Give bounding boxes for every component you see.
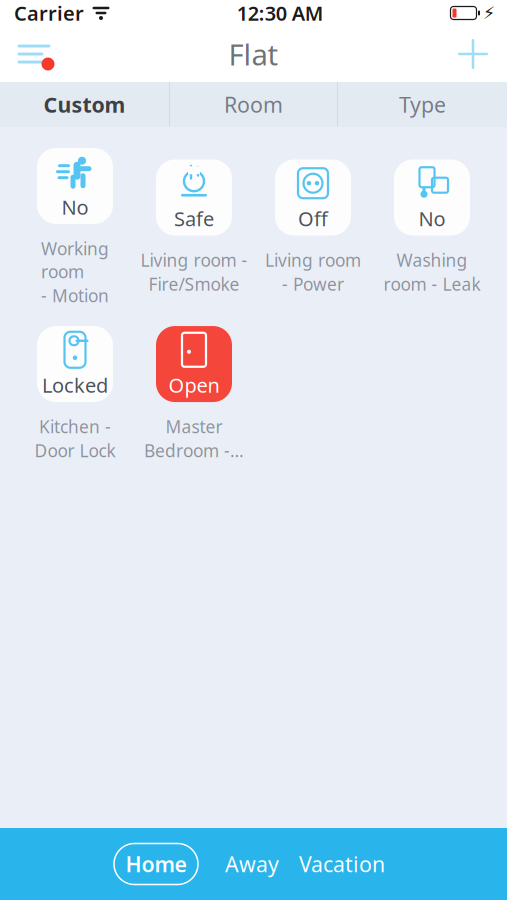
staticText: Flat [228,34,278,73]
staticText: Bedroom -… [144,439,244,462]
button[interactable]: Add [447,32,499,76]
staticText: ⚡︎ [483,3,495,23]
staticText: Washing [396,248,467,271]
staticText: Locked [42,372,108,398]
staticText: - Power [282,272,344,295]
button[interactable]: Type [338,82,507,127]
button[interactable]: Safe [156,159,232,235]
staticText: Door Lock [34,439,115,462]
button[interactable]: Away [216,843,288,884]
button[interactable]: Locked [37,326,113,402]
staticText: room - Leak [383,272,480,295]
staticText: Away [225,850,279,878]
button[interactable]: Menu [8,32,60,76]
staticText: Vacation [299,850,385,878]
button[interactable]: No [37,148,113,224]
staticText: - Motion [41,284,109,307]
staticText: Room [224,90,283,119]
staticText: Master [165,415,222,438]
button[interactable]: Vacation [296,843,388,884]
staticText: No [418,205,445,232]
staticText: Living room [265,248,361,271]
button[interactable]: Home [114,843,198,884]
staticText: Home [125,850,186,878]
staticText: Custom [43,90,125,119]
staticText: Working room [41,237,109,283]
staticText: No [61,194,88,220]
staticText: Living room - [140,248,247,271]
button[interactable]: Room [170,82,337,127]
button[interactable]: No [394,159,470,235]
button[interactable]: Off [275,159,351,235]
staticText: Safe [174,205,214,232]
staticText: Kitchen - [39,415,111,438]
staticText: Carrier [14,0,84,26]
staticText: Fire/Smoke [148,272,239,295]
staticText: Type [399,90,446,119]
staticText: Open [168,372,219,398]
staticText: 12:30 AM [237,0,324,26]
button[interactable]: Open [156,326,232,402]
button[interactable]: Custom [0,82,169,127]
staticText: Off [298,205,328,232]
